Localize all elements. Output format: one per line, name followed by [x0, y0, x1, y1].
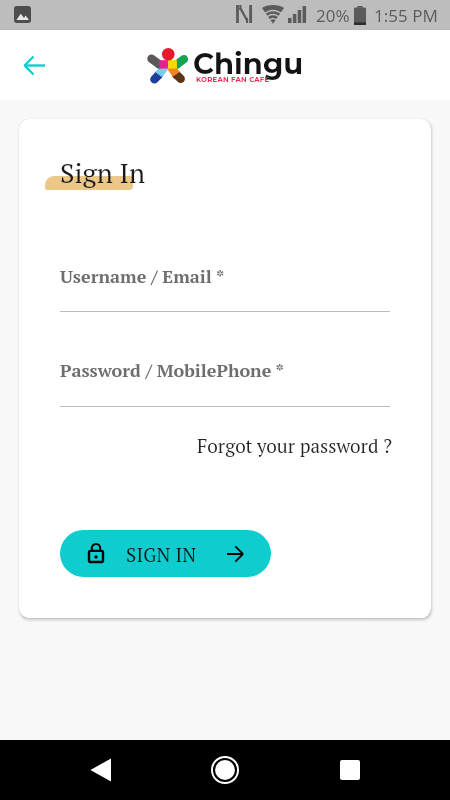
staticText: Forgot your password ? — [197, 433, 393, 458]
button[interactable]: Home — [197, 740, 253, 800]
button[interactable]: SIGN IN — [60, 530, 271, 577]
staticText: 20% — [316, 4, 350, 27]
staticText: 1:55 PM — [374, 4, 438, 27]
staticText: Sign In — [60, 155, 145, 191]
staticText: KOREAN FAN CAFE — [196, 75, 270, 84]
button[interactable]: Back — [14, 45, 54, 85]
staticText: Chingu — [193, 46, 304, 81]
button[interactable]: Back — [72, 740, 128, 800]
button[interactable]: Recent apps — [322, 740, 378, 800]
staticText: Password / MobilePhone * — [60, 358, 284, 382]
button[interactable]: Forgot your password ? — [197, 433, 393, 458]
staticText: SIGN IN — [126, 542, 197, 567]
staticText: Username / Email * — [60, 264, 225, 288]
